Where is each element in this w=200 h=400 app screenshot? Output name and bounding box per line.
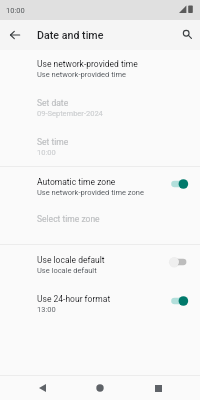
staticText: 10:00 [37, 148, 56, 157]
button[interactable]: Use network-provided time [0, 50, 200, 88]
button[interactable]: Navigate up [1, 21, 29, 49]
staticText: Automatic time zone [37, 177, 116, 187]
button[interactable]: Recent apps [116, 376, 200, 400]
button[interactable]: Select time zone [0, 206, 200, 244]
staticText: 13:00 [37, 305, 56, 314]
button[interactable]: Back [0, 376, 84, 400]
button[interactable]: Use locale default [0, 245, 200, 284]
staticText: Date and time [37, 29, 104, 42]
staticText: Use network-provided time [37, 59, 138, 69]
button[interactable]: Use 24-hour format [0, 284, 200, 323]
staticText: 10:00 [6, 6, 25, 15]
staticText: Use network-provided time zone [37, 188, 144, 197]
staticText: Use network-provided time [37, 70, 126, 79]
staticText: Use locale default [37, 266, 97, 275]
button[interactable]: Home [84, 376, 116, 400]
staticText: Select time zone [37, 214, 100, 224]
staticText: Set time [37, 137, 69, 147]
button[interactable]: Search [172, 21, 200, 49]
button[interactable]: Set date [0, 88, 200, 127]
staticText: Use locale default [37, 255, 105, 265]
staticText: 09-September-2024 [37, 109, 103, 118]
staticText: Set date [37, 98, 69, 108]
button[interactable]: Set time [0, 127, 200, 166]
staticText: Use 24-hour format [37, 294, 111, 304]
button[interactable]: Automatic time zone [0, 167, 200, 206]
